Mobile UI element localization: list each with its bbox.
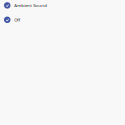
button[interactable]: Ambient Sound <box>0 0 125 13</box>
staticText: Ambient Sound <box>14 2 47 8</box>
button[interactable]: Off <box>0 13 125 27</box>
staticText: Off <box>14 17 20 23</box>
